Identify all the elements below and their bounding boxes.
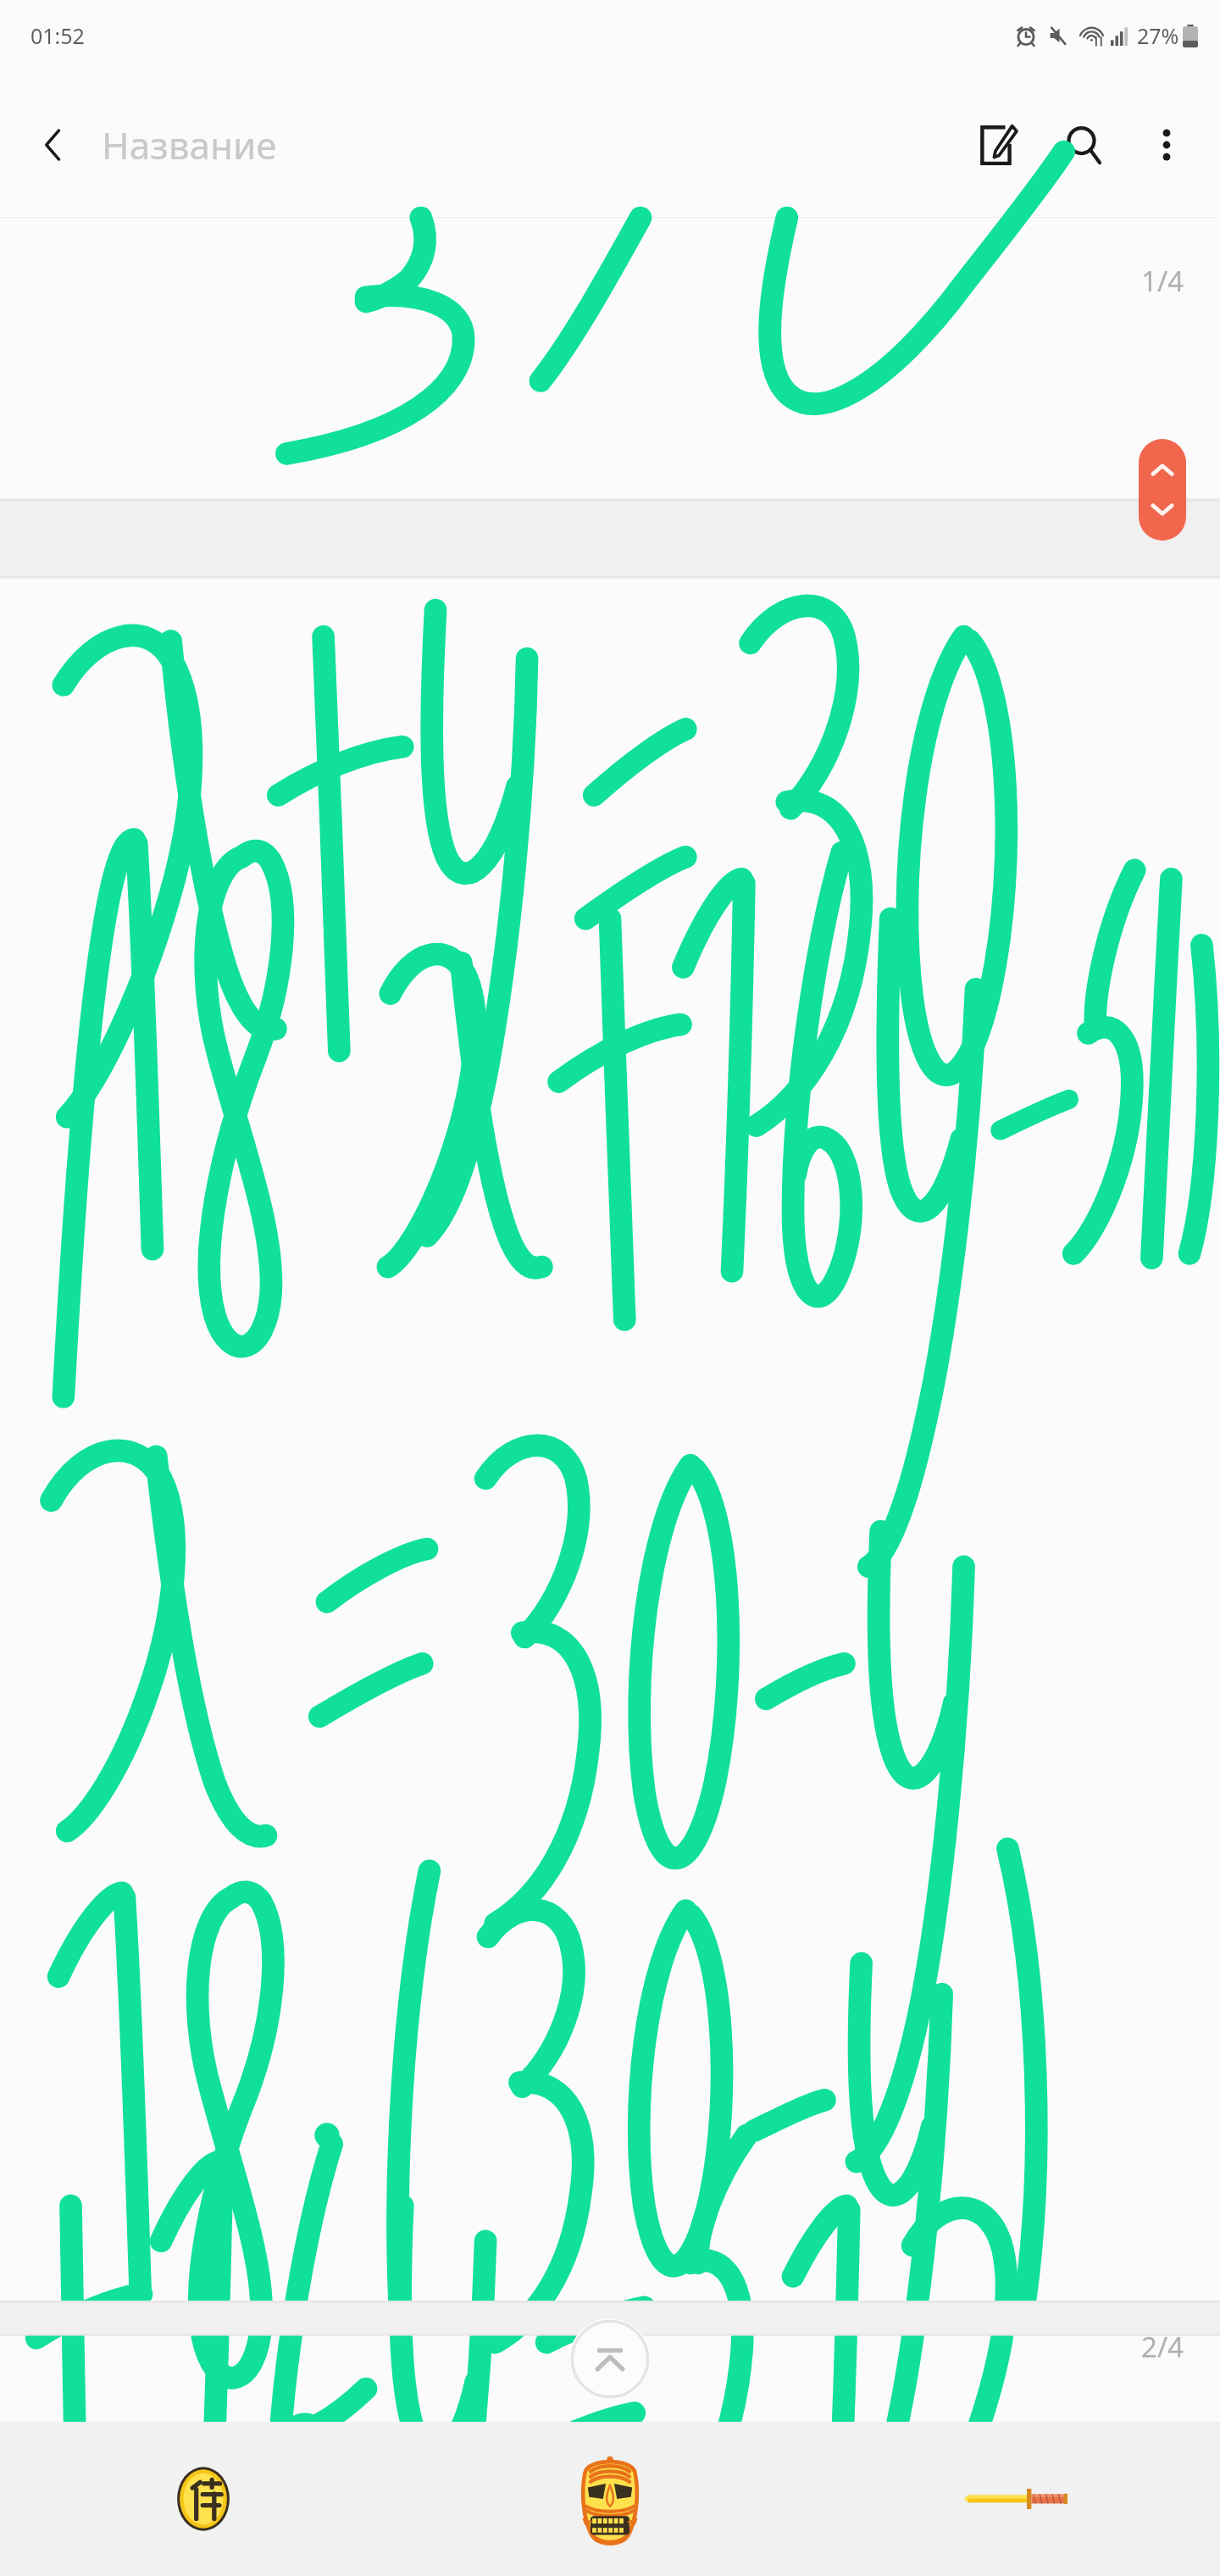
button[interactable]: Mask: [407, 2422, 813, 2576]
button[interactable]: Coin: [0, 2422, 407, 2576]
button[interactable]: More options: [1128, 107, 1205, 183]
button[interactable]: 1/4: [0, 218, 1220, 2422]
button[interactable]: Edit note: [952, 101, 1040, 189]
staticText: 2/4: [1141, 2328, 1184, 2366]
button[interactable]: Sword: [813, 2422, 1220, 2576]
staticText: 27%: [1137, 21, 1179, 50]
button[interactable]: Scroll to top: [569, 2318, 651, 2400]
staticText: 01:52: [30, 21, 85, 50]
staticText: Название: [102, 119, 952, 170]
button[interactable]: Back: [14, 104, 95, 186]
button[interactable]: Search: [1040, 101, 1128, 189]
staticText: 1/4: [1141, 262, 1184, 300]
button[interactable]: Scroll: [1139, 439, 1186, 541]
